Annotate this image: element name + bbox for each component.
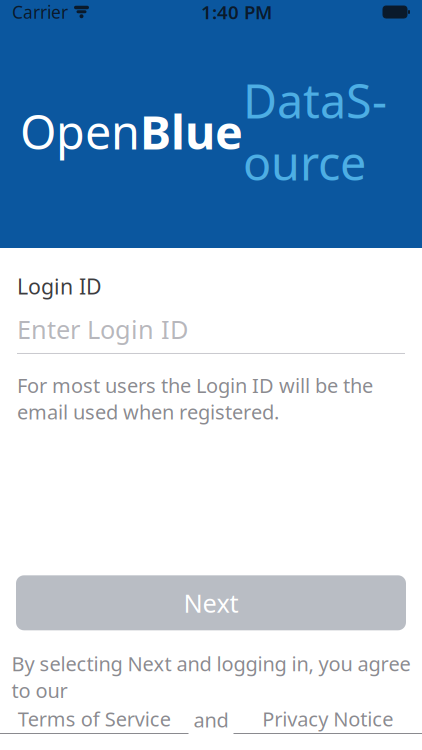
staticText: Carrier xyxy=(12,0,68,23)
staticText: Open xyxy=(20,100,140,162)
button[interactable]: Privacy Notice xyxy=(233,705,422,734)
staticText: Login ID xyxy=(17,272,102,300)
staticText: Blue xyxy=(140,100,243,162)
staticText: By selecting Next and logging in, you ag… xyxy=(11,650,410,703)
staticText: DataSource xyxy=(243,69,387,193)
staticText: Privacy Notice xyxy=(262,705,393,732)
staticText: Terms of Service xyxy=(18,705,171,732)
staticText: For most users the Login ID will be the … xyxy=(17,372,373,425)
staticText: 1:40 PM xyxy=(201,0,272,24)
staticText: Enter Login ID xyxy=(17,312,188,346)
button[interactable]: Next xyxy=(16,575,406,630)
button[interactable]: Terms of Service xyxy=(0,705,188,734)
staticText: Next xyxy=(183,586,238,620)
staticText: and xyxy=(188,706,233,733)
